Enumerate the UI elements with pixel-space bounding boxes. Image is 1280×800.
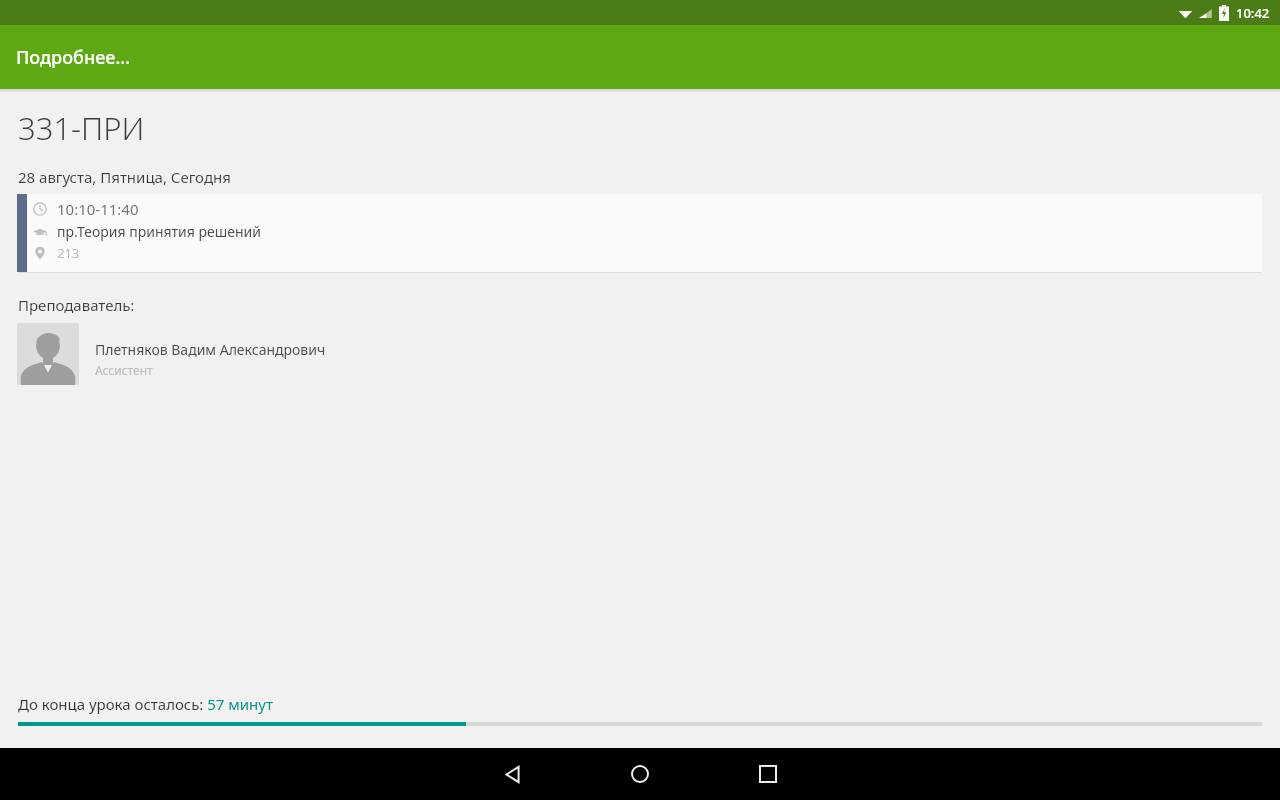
button[interactable]: Back bbox=[480, 748, 544, 800]
button[interactable]: Подробнее... bbox=[0, 25, 1280, 89]
staticText: 10:10-11:40 bbox=[57, 199, 139, 219]
staticText: пр.Теория принятия решений bbox=[57, 222, 261, 241]
staticText: Ассистент bbox=[95, 362, 153, 378]
button[interactable]: Плетняков Вадим Александрович bbox=[17, 323, 1280, 385]
staticText: 331-ПРИ bbox=[18, 107, 145, 149]
staticText: До конца урока осталось: 57 минут bbox=[18, 694, 273, 714]
staticText: Преподаватель: bbox=[18, 295, 135, 315]
staticText: 28 августа, Пятница, Сегодня bbox=[18, 167, 231, 187]
button[interactable]: Home bbox=[608, 748, 672, 800]
button[interactable]: 10:10-11:40 bbox=[17, 194, 1262, 272]
staticText: 10:42 bbox=[1236, 4, 1270, 22]
staticText: Плетняков Вадим Александрович bbox=[95, 340, 326, 359]
button[interactable]: Recents bbox=[736, 748, 800, 800]
staticText: 213 bbox=[57, 244, 80, 262]
staticText: Подробнее... bbox=[16, 45, 131, 70]
